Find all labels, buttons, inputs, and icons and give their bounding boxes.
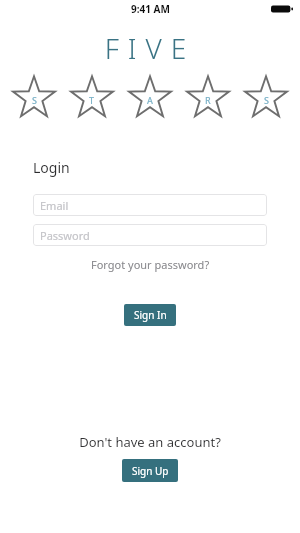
button[interactable]: Password (33, 224, 267, 246)
staticText: S (264, 94, 269, 106)
button[interactable]: Email (33, 194, 267, 216)
staticText: FIVE (0, 29, 300, 67)
staticText: Forgot your password? (91, 257, 210, 272)
staticText: R (205, 94, 211, 106)
button[interactable]: Sign In (124, 304, 176, 326)
staticText: Don't have an account? (0, 433, 300, 451)
staticText: Login (33, 158, 70, 177)
button[interactable]: Forgot your password? (0, 254, 300, 275)
staticText: Sign Up (132, 464, 169, 478)
staticText: Password (40, 228, 90, 243)
staticText: A (147, 94, 153, 106)
button[interactable]: Sign Up (122, 459, 178, 482)
staticText: Email (40, 198, 69, 213)
staticText: 9:41 AM (131, 2, 170, 16)
staticText: Sign In (134, 308, 167, 322)
staticText: S (32, 94, 37, 106)
staticText: T (89, 94, 95, 106)
